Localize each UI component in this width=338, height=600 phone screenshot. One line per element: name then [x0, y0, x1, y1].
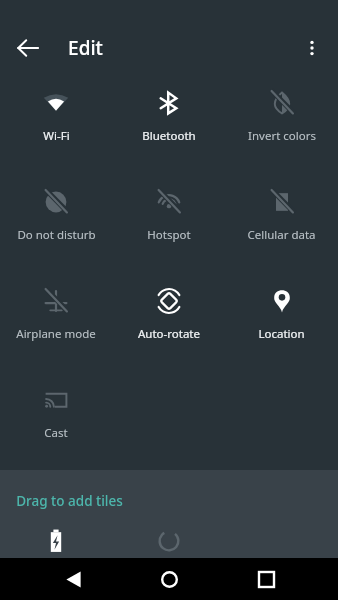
button[interactable] — [112, 526, 225, 556]
button[interactable]: Cellular data — [225, 173, 338, 272]
staticText: Airplane mode — [16, 326, 96, 342]
button[interactable]: Home — [145, 558, 193, 600]
button[interactable]: Back — [49, 558, 97, 600]
staticText: Hotspot — [147, 227, 191, 243]
button[interactable]: Back — [8, 28, 48, 68]
staticText: Edit — [68, 35, 103, 61]
button[interactable]: Recent apps — [242, 558, 290, 600]
button[interactable]: Airplane mode — [0, 272, 112, 371]
staticText: Cellular data — [247, 227, 316, 243]
button[interactable] — [0, 526, 112, 556]
button[interactable]: Auto-rotate — [112, 272, 225, 371]
staticText: Location — [258, 326, 305, 342]
staticText: Bluetooth — [142, 128, 196, 144]
button[interactable]: More options — [292, 28, 332, 68]
staticText: Cast — [44, 425, 68, 441]
staticText: Drag to add tiles — [16, 492, 123, 510]
button[interactable]: Invert colors — [225, 74, 338, 173]
staticText: Auto-rotate — [138, 326, 200, 342]
button[interactable]: Hotspot — [112, 173, 225, 272]
button[interactable]: Bluetooth — [112, 74, 225, 173]
button[interactable]: Wi-Fi — [0, 74, 112, 173]
button[interactable]: Cast — [0, 371, 112, 470]
staticText: Invert colors — [248, 128, 316, 144]
staticText: Do not disturb — [17, 227, 96, 243]
staticText: Wi-Fi — [43, 128, 70, 144]
button[interactable]: Do not disturb — [0, 173, 112, 272]
button[interactable]: Location — [225, 272, 338, 371]
